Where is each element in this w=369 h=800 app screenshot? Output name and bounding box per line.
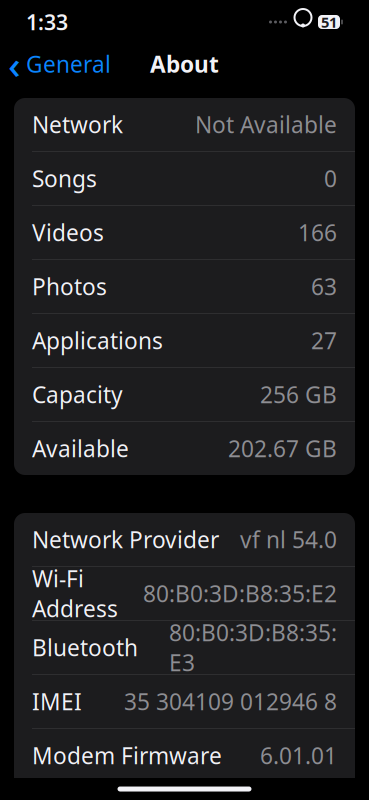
button[interactable]: Photos — [14, 260, 355, 313]
staticText: Modem Firmware — [32, 740, 222, 770]
button[interactable]: Capacity — [14, 368, 355, 421]
staticText: 80:B0:3D:B8:35:E3 — [169, 617, 337, 678]
staticText: 51 — [321, 12, 337, 32]
staticText: Available — [32, 433, 129, 463]
button[interactable]: Modem Firmware — [14, 729, 355, 782]
button[interactable]: Videos — [14, 206, 355, 259]
staticText: Songs — [32, 163, 97, 193]
staticText: IMEI — [32, 686, 82, 716]
staticText: General — [26, 49, 111, 79]
staticText: Videos — [32, 217, 104, 247]
button[interactable]: Network — [14, 98, 355, 151]
button[interactable]: Network Provider — [14, 513, 355, 566]
staticText: Network — [32, 109, 123, 139]
button[interactable]: Available — [14, 422, 355, 475]
staticText: Applications — [32, 325, 163, 355]
staticText: 166 — [298, 217, 337, 247]
staticText: Capacity — [32, 379, 123, 409]
staticText: Photos — [32, 271, 107, 301]
button[interactable]: Wi-Fi Address — [14, 567, 355, 620]
staticText: Wi-Fi Address — [32, 563, 118, 624]
button[interactable]: Applications — [14, 314, 355, 367]
staticText: vf nl 54.0 — [240, 524, 337, 554]
button[interactable]: Bluetooth — [14, 621, 355, 674]
staticText: 80:B0:3D:B8:35:E2 — [143, 578, 337, 608]
staticText: 256 GB — [260, 379, 337, 409]
staticText: ‹ — [8, 38, 21, 90]
button[interactable]: ‹ — [0, 34, 111, 94]
staticText: 27 — [311, 325, 337, 355]
staticText: 1:33 — [26, 8, 68, 36]
button[interactable]: Songs — [14, 152, 355, 205]
staticText: 35 304109 012946 8 — [124, 686, 337, 716]
button[interactable]: SEID — [14, 783, 355, 800]
staticText: 63 — [311, 271, 337, 301]
staticText: Bluetooth — [32, 632, 138, 662]
staticText: Not Available — [195, 109, 337, 139]
staticText: 202.67 GB — [228, 433, 337, 463]
staticText: Network Provider — [32, 524, 219, 554]
staticText: 6.01.01 — [260, 740, 337, 770]
staticText: 0 — [324, 163, 337, 193]
button[interactable]: IMEI — [14, 675, 355, 728]
staticText: About — [150, 49, 219, 79]
